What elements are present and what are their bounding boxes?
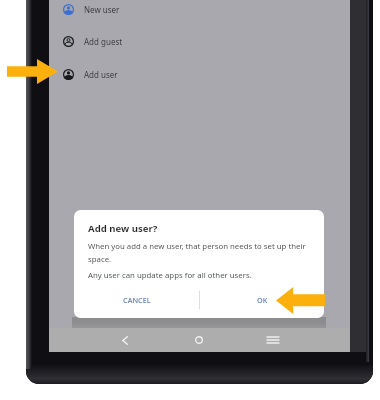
staticText: Add guest <box>84 36 123 47</box>
staticText: When you add a new user, that person nee… <box>88 241 310 264</box>
staticText: Add new user? <box>88 222 158 235</box>
other: Step 1 callout <box>7 59 58 84</box>
other: Step 2 callout <box>276 287 325 314</box>
button[interactable]: Home <box>187 328 211 352</box>
staticText: Add user <box>84 69 118 80</box>
button[interactable]: Recent apps <box>261 328 285 352</box>
staticText: CANCEL <box>123 295 151 305</box>
button[interactable]: CANCEL <box>113 289 161 311</box>
staticText: OK <box>257 295 268 305</box>
button[interactable]: Add user <box>49 61 350 87</box>
staticText: New user <box>84 4 120 15</box>
button[interactable]: Add guest <box>49 28 350 54</box>
staticText: Any user can update apps for all other u… <box>88 270 252 281</box>
button[interactable]: New user <box>49 0 350 22</box>
button[interactable]: OK <box>238 289 286 311</box>
button[interactable]: Back <box>113 328 137 352</box>
